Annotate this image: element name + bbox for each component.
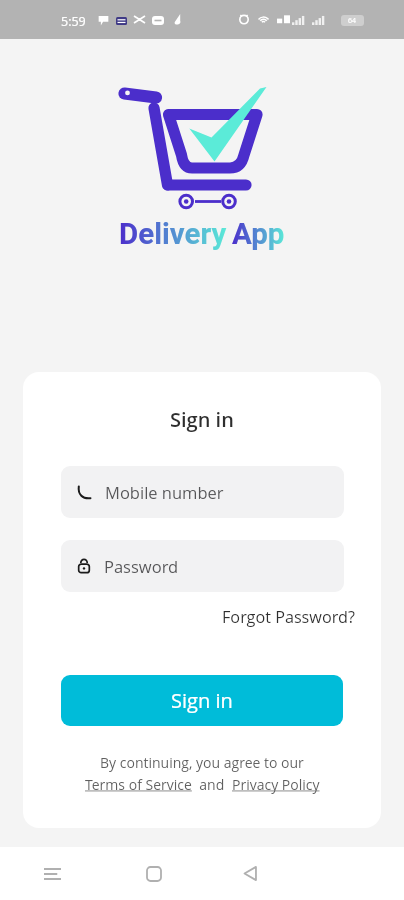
button[interactable]: Recent apps — [0, 847, 105, 900]
staticText: By continuing, you agree to our — [100, 753, 304, 772]
button[interactable]: Terms of Service — [85, 775, 192, 794]
staticText: Privacy Policy — [232, 775, 320, 794]
staticText: Mobile number — [105, 481, 224, 503]
staticText: 64 — [348, 16, 357, 26]
button[interactable]: Privacy Policy — [232, 775, 320, 794]
button[interactable]: Sign in — [61, 675, 343, 726]
staticText: Forgot Password? — [222, 606, 355, 628]
button[interactable]: Home — [105, 847, 202, 900]
staticText: Delivery — [119, 217, 227, 252]
button[interactable]: Mobile number — [61, 466, 344, 518]
staticText: App — [232, 217, 285, 252]
staticText: Terms of Service — [85, 775, 192, 794]
button[interactable]: Forgot Password? — [218, 602, 359, 632]
staticText: Sign in — [170, 406, 234, 433]
button[interactable]: Password — [61, 540, 344, 592]
staticText: and — [192, 775, 232, 794]
button[interactable]: Back — [202, 847, 298, 900]
staticText: Sign in — [171, 687, 233, 714]
staticText: Password — [104, 555, 179, 577]
staticText: 5:59 — [61, 13, 86, 30]
